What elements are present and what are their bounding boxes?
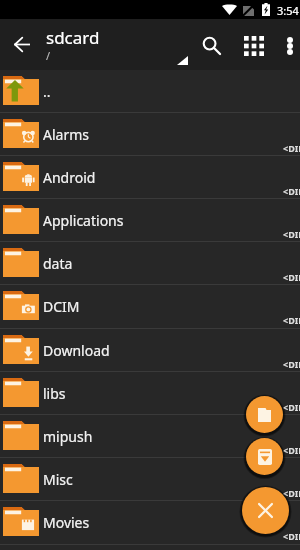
button[interactable]: Search [195, 29, 227, 61]
staticText: <DIR> [283, 185, 300, 197]
staticText: <DIR> [283, 228, 300, 240]
button[interactable]: Applications [0, 199, 300, 241]
button[interactable]: .. [0, 70, 300, 112]
staticText: DCIM [43, 297, 80, 316]
button[interactable]: Android [0, 156, 300, 198]
button[interactable]: libs [0, 372, 300, 414]
staticText: <DIR> [283, 530, 300, 542]
staticText: <DIR> [283, 314, 300, 326]
staticText: / [46, 48, 51, 63]
staticText: Applications [43, 211, 124, 230]
staticText: <DIR> [283, 142, 300, 154]
staticText: 3:54 [277, 3, 299, 18]
staticText: Movies [43, 513, 90, 532]
button[interactable]: Alarms [0, 113, 300, 155]
staticText: <DIR> [283, 358, 300, 370]
staticText: mipush [43, 427, 93, 446]
button[interactable]: Movies [0, 501, 300, 543]
staticText: Download [43, 341, 110, 360]
staticText: libs [43, 384, 66, 403]
staticText: .. [43, 82, 51, 101]
staticText: <DIR> [283, 444, 300, 456]
button[interactable]: New folder [246, 396, 283, 433]
staticText: <DIR> [283, 271, 300, 283]
staticText: sdcard [46, 26, 100, 49]
button[interactable]: Download [0, 329, 300, 371]
button[interactable]: DCIM [0, 285, 300, 327]
button[interactable]: Extract archive [246, 438, 283, 475]
button[interactable]: Close [242, 487, 289, 534]
staticText: Android [43, 168, 96, 187]
button[interactable]: mipush [0, 415, 300, 457]
staticText: <DIR> [283, 487, 300, 499]
staticText: <DIR> [283, 401, 300, 413]
staticText: Misc [43, 470, 73, 489]
button[interactable]: data [0, 242, 300, 284]
button[interactable]: Misc [0, 458, 300, 500]
button[interactable]: More options [275, 31, 300, 60]
button[interactable]: Grid view [237, 29, 270, 62]
button[interactable]: Back [6, 28, 38, 60]
staticText: Alarms [43, 125, 89, 144]
staticText: data [43, 254, 73, 273]
